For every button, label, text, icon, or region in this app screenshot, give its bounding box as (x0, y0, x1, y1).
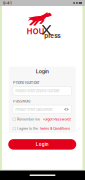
staticText: Terms & Conditions (39, 126, 70, 130)
staticText: Forgot Password? (42, 117, 71, 121)
button[interactable]: Forgot Password? (42, 117, 71, 121)
staticText: Remember me (17, 117, 40, 121)
staticText: 9:41 (3, 1, 12, 5)
button[interactable]: Login (8, 139, 76, 150)
staticText: Please enter phone number (15, 89, 59, 93)
staticText: HOU (27, 27, 44, 36)
button[interactable]: Terms & Conditions (39, 126, 70, 130)
staticText: Phone Number (13, 80, 40, 85)
staticText: Password (13, 99, 30, 103)
staticText: I agree to the (17, 126, 38, 130)
staticText: Please enter password (15, 107, 52, 112)
staticText: press (44, 32, 60, 39)
staticText: Login (36, 68, 49, 74)
staticText: Login (36, 142, 49, 147)
button[interactable]: Remember me (13, 117, 40, 121)
